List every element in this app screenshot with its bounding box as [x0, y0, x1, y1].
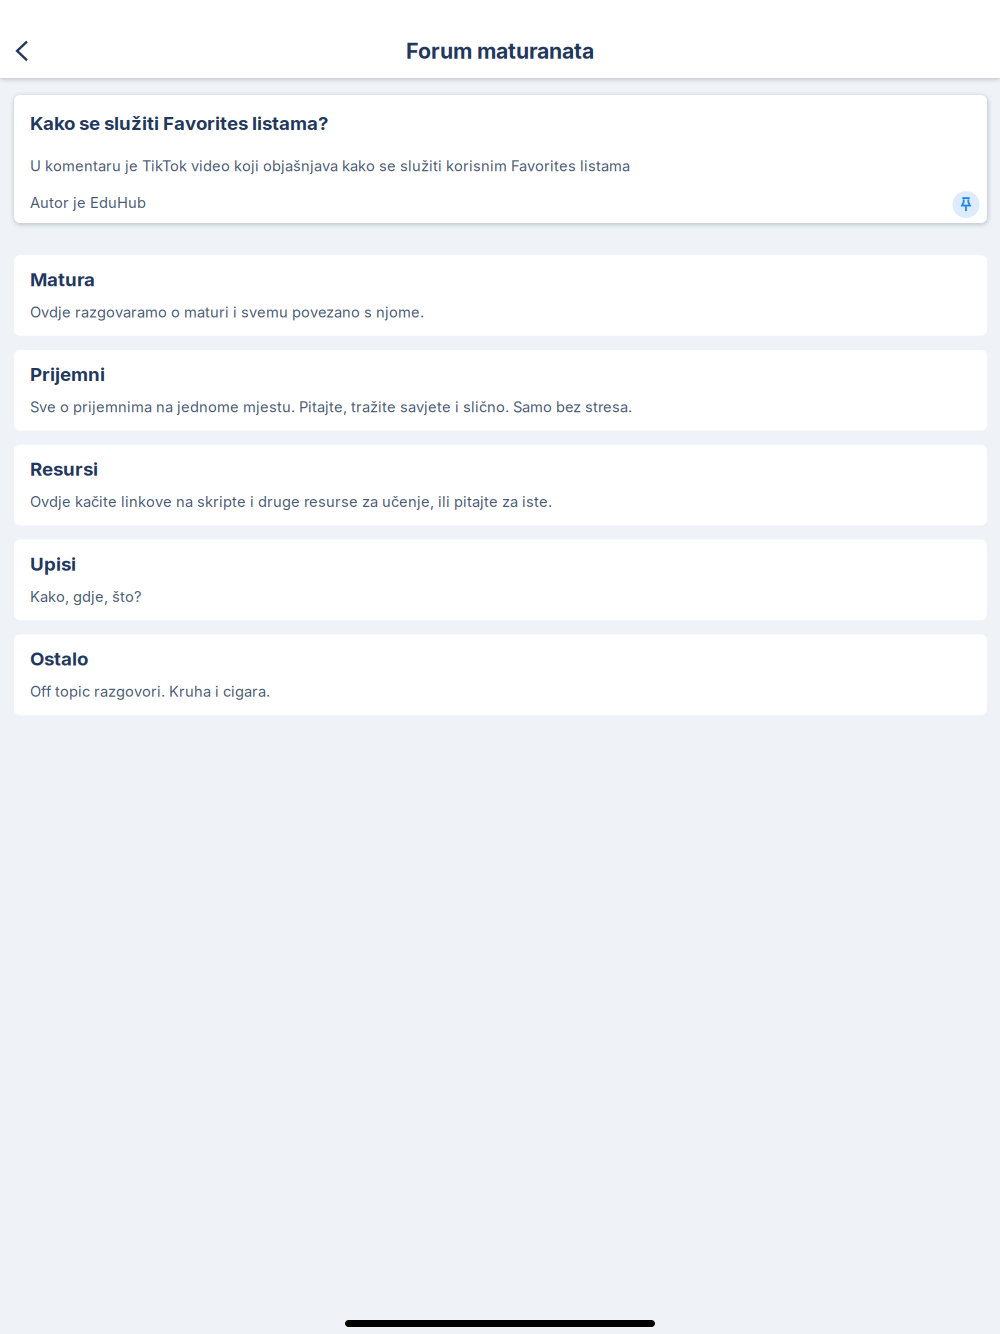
- staticText: Matura: [30, 268, 95, 291]
- button[interactable]: Prijemni: [14, 350, 987, 430]
- staticText: Ostalo: [30, 647, 88, 670]
- staticText: Kako se služiti Favorites listama?: [30, 112, 328, 135]
- button[interactable]: Kako se služiti Favorites listama?: [14, 95, 987, 223]
- staticText: Upisi: [30, 553, 76, 575]
- staticText: Forum maturanata: [406, 38, 594, 64]
- button[interactable]: Upisi: [14, 540, 987, 620]
- staticText: Prijemni: [30, 363, 105, 385]
- staticText: Autor je EduHub: [30, 194, 146, 211]
- button[interactable]: Back: [0, 26, 44, 76]
- staticText: U komentaru je TikTok video koji objašnj…: [30, 157, 630, 175]
- staticText: Ovdje kačite linkove na skripte i druge …: [30, 493, 552, 510]
- staticText: Off topic razgovori. Kruha i cigara.: [30, 682, 270, 700]
- staticText: Sve o prijemnima na jednome mjestu. Pita…: [30, 398, 632, 416]
- staticText: Resursi: [30, 458, 98, 480]
- button[interactable]: Resursi: [14, 445, 987, 525]
- button[interactable]: Matura: [14, 255, 987, 336]
- staticText: Kako, gdje, što?: [30, 588, 141, 605]
- button[interactable]: Ostalo: [14, 634, 987, 715]
- staticText: Ovdje razgovaramo o maturi i svemu povez…: [30, 303, 424, 321]
